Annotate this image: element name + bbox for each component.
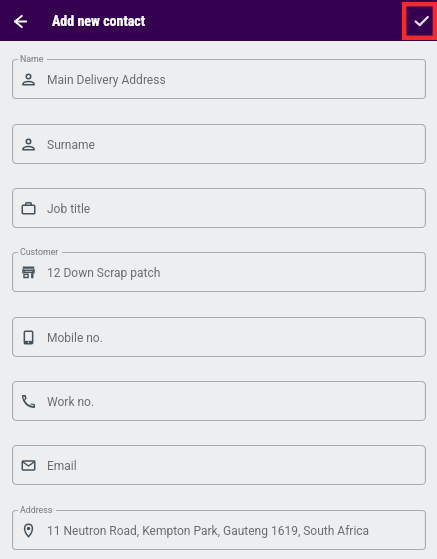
staticText: Main Delivery Address	[47, 73, 166, 87]
staticText: Address	[20, 505, 53, 515]
staticText: Work no.	[47, 395, 95, 409]
staticText: Mobile no.	[47, 331, 103, 345]
staticText: Surname	[47, 138, 95, 152]
button[interactable]: Main Delivery Address	[12, 59, 426, 99]
staticText: Name	[20, 54, 44, 64]
button[interactable]: Back	[7, 8, 34, 35]
staticText: Email	[47, 459, 77, 473]
staticText: 12 Down Scrap patch	[47, 266, 161, 280]
button[interactable]: Surname	[12, 124, 426, 164]
staticText: Customer	[20, 247, 59, 257]
button[interactable]: 12 Down Scrap patch	[12, 252, 426, 292]
button[interactable]: Job title	[12, 188, 426, 228]
button[interactable]: Work no.	[12, 381, 426, 421]
button[interactable]: Mobile no.	[12, 317, 426, 357]
staticText: Job title	[47, 202, 91, 216]
button[interactable]: Email	[12, 445, 426, 485]
staticText: 11 Neutron Road, Kempton Park, Gauteng 1…	[47, 524, 370, 538]
staticText: Add new contact	[52, 13, 146, 29]
button[interactable]: 11 Neutron Road, Kempton Park, Gauteng 1…	[12, 510, 426, 550]
button[interactable]: Save	[402, 2, 437, 40]
